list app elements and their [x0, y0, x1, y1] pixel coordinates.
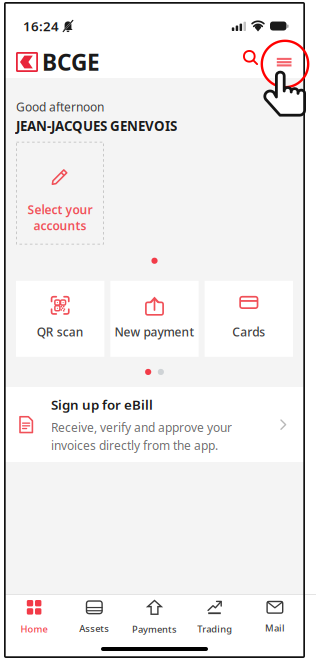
staticText: invoices directly from the app.	[51, 437, 218, 453]
staticText: Payments	[132, 623, 177, 635]
staticText: New payment	[114, 324, 194, 340]
staticText: BCGE	[42, 47, 100, 77]
button[interactable]: Sign up for eBill	[4, 387, 305, 462]
staticText: Good afternoon	[16, 99, 104, 115]
staticText: QR scan	[37, 324, 84, 340]
button[interactable]: New payment	[110, 281, 199, 357]
staticText: 16:24	[23, 17, 59, 35]
staticText: accounts	[33, 218, 86, 233]
button[interactable]: Mail	[245, 595, 305, 639]
staticText: Receive, verify and approve your	[51, 419, 232, 435]
button[interactable]: Payments	[124, 595, 185, 639]
staticText: Select your	[27, 202, 92, 217]
staticText: Sign up for eBill	[51, 396, 153, 413]
staticText: JEAN-JACQUES GENEVOIS	[16, 117, 177, 135]
staticText: Mail	[265, 622, 285, 634]
staticText: Assets	[79, 622, 109, 635]
staticText: Cards	[232, 324, 265, 340]
staticText: Trading	[197, 623, 232, 635]
button[interactable]: Menu	[260, 39, 310, 89]
button[interactable]: Select your	[16, 142, 104, 245]
staticText: Home	[21, 623, 48, 635]
button[interactable]: Cards	[205, 281, 293, 357]
button[interactable]: Trading	[185, 595, 245, 639]
button[interactable]: Home	[4, 595, 64, 639]
button[interactable]: Search	[240, 47, 266, 73]
button[interactable]: QR scan	[16, 281, 104, 357]
button[interactable]: Assets	[64, 595, 124, 639]
